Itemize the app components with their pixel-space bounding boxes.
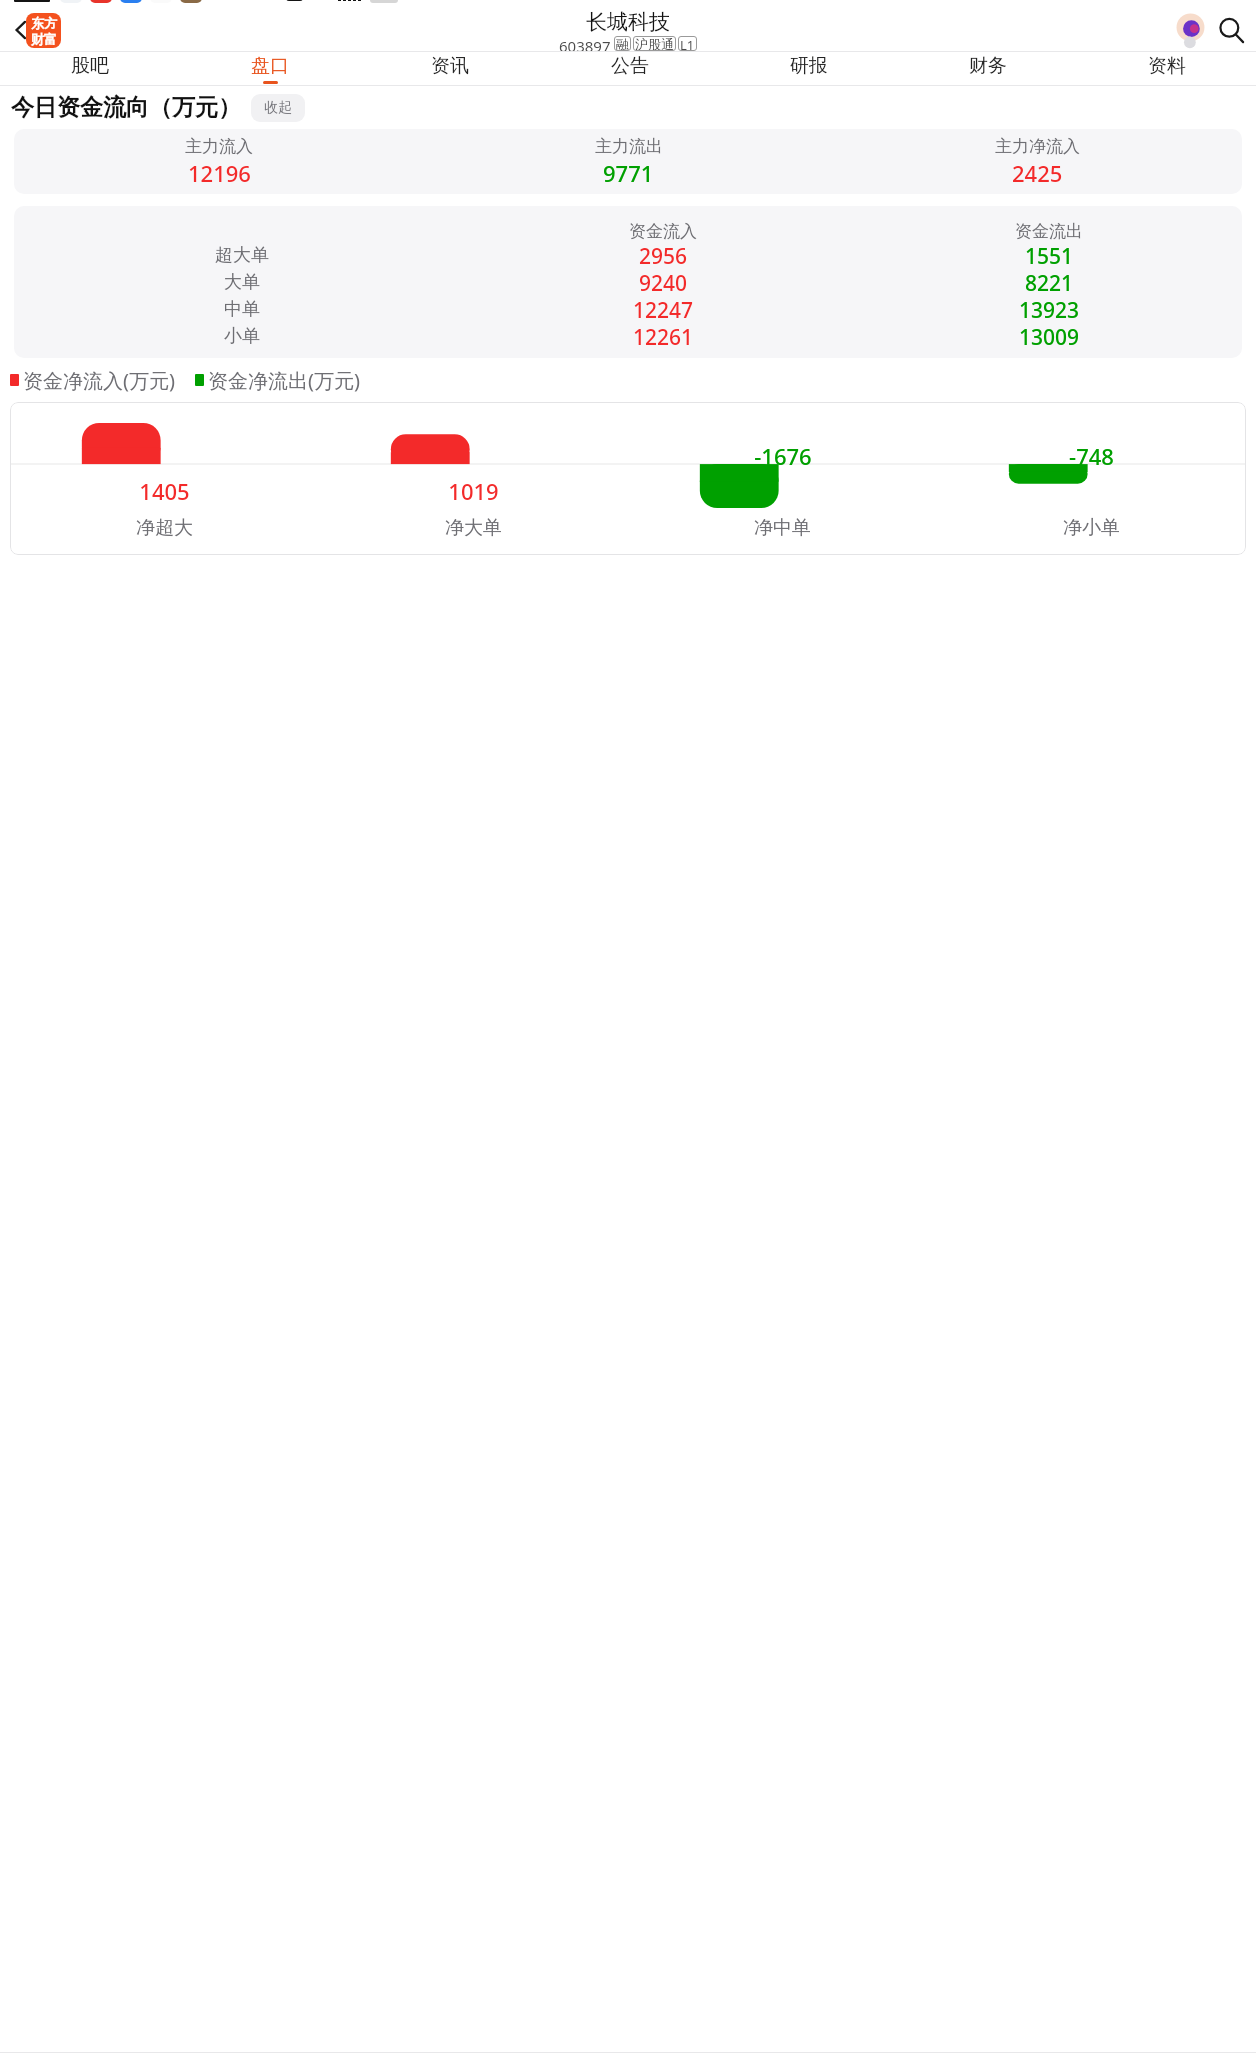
staticText: 13923 — [1019, 296, 1080, 323]
button[interactable]: 公告 — [540, 52, 719, 85]
staticText: 长城科技 — [586, 9, 670, 35]
staticText: 2425 — [1012, 158, 1063, 188]
staticText: 研报 — [790, 54, 828, 78]
staticText: 股吧 — [71, 54, 109, 78]
staticText: 1551 — [1025, 242, 1074, 269]
button[interactable]: 小单 — [14, 323, 1242, 350]
staticText: 主力净流入 — [995, 136, 1080, 157]
staticText: 8221 — [1025, 269, 1074, 296]
staticText: 13009 — [1019, 323, 1080, 350]
staticText: 东方 — [31, 15, 57, 31]
staticText: 9240 — [639, 269, 688, 296]
button[interactable]: 收起 — [251, 94, 305, 122]
button[interactable]: 研报 — [719, 52, 898, 85]
button[interactable]: AI assistant — [1175, 15, 1206, 46]
staticText: 资金流入 — [629, 221, 697, 242]
staticText: 盘口 — [251, 54, 289, 78]
staticText: 资金净流入(万元) — [23, 367, 175, 394]
staticText: 超大单 — [215, 244, 269, 267]
staticText: 资金流出 — [1015, 221, 1083, 242]
staticText: 9771 — [603, 158, 654, 188]
staticText: 603897 — [559, 36, 611, 51]
staticText: 收起 — [264, 99, 292, 117]
staticText: 2956 — [639, 242, 688, 269]
staticText: 沪股通 — [635, 36, 674, 51]
staticText: 净小单 — [1063, 516, 1120, 540]
staticText: L1 — [680, 36, 695, 51]
staticText: 融 — [616, 36, 629, 51]
staticText: 小单 — [224, 325, 260, 348]
staticText: 1019 — [448, 476, 499, 506]
staticText: 资金净流出(万元) — [208, 367, 360, 394]
button[interactable]: Back — [2, 11, 40, 49]
staticText: 12261 — [633, 323, 694, 350]
button[interactable]: 1405 — [10, 402, 1246, 555]
button[interactable]: 超大单 — [14, 242, 1242, 269]
staticText: 财务 — [969, 54, 1007, 78]
staticText: -748 — [1069, 441, 1114, 471]
staticText: 净大单 — [445, 516, 502, 540]
staticText: 大单 — [224, 271, 260, 294]
button[interactable]: 中单 — [14, 296, 1242, 323]
button[interactable]: East Money logo — [26, 13, 61, 48]
button[interactable]: 财务 — [898, 52, 1077, 85]
staticText: 资料 — [1148, 54, 1186, 78]
staticText: -1676 — [754, 441, 812, 471]
staticText: 净超大 — [136, 516, 193, 540]
staticText: 1405 — [139, 476, 190, 506]
button[interactable]: 资料 — [1077, 52, 1256, 85]
button[interactable]: 长城科技 — [559, 9, 697, 51]
button[interactable]: Search — [1210, 9, 1252, 51]
staticText: 财富 — [31, 31, 57, 47]
staticText: 主力流出 — [595, 136, 663, 157]
staticText: 今日资金流向（万元） — [11, 93, 241, 122]
button[interactable]: 主力流入 — [14, 129, 1242, 194]
staticText: 中单 — [224, 298, 260, 321]
staticText: 资讯 — [431, 54, 469, 78]
staticText: 净中单 — [754, 516, 811, 540]
staticText: 公告 — [611, 54, 649, 78]
staticText: 主力流入 — [185, 136, 253, 157]
staticText: 12247 — [633, 296, 694, 323]
button[interactable]: 盘口 — [180, 52, 360, 85]
button[interactable]: 资讯 — [360, 52, 540, 85]
staticText: 12196 — [188, 158, 251, 188]
button[interactable]: 大单 — [14, 269, 1242, 296]
button[interactable]: 股吧 — [0, 52, 180, 85]
